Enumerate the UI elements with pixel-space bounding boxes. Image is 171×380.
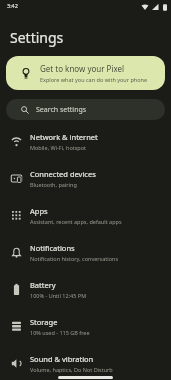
staticText: Explore what you can do with your phone bbox=[40, 76, 148, 83]
button[interactable]: Sound & vibration bbox=[0, 345, 171, 380]
staticText: Search settings bbox=[36, 105, 87, 115]
staticText: Apps bbox=[30, 206, 48, 216]
staticText: 3:42 bbox=[7, 2, 18, 9]
button[interactable]: Get to know your Pixel bbox=[6, 56, 165, 90]
staticText: Assistant, recent apps, default apps bbox=[30, 218, 122, 225]
staticText: 100% - Until 12:45 PM bbox=[30, 292, 87, 299]
button[interactable]: Notifications bbox=[0, 234, 171, 271]
button[interactable]: Network & internet bbox=[0, 123, 171, 160]
staticText: Sound & vibration bbox=[30, 354, 94, 364]
staticText: Storage bbox=[30, 317, 58, 327]
staticText: Connected devices bbox=[30, 169, 96, 179]
staticText: Notification history, conversations bbox=[30, 255, 119, 262]
staticText: Get to know your Pixel bbox=[40, 63, 125, 74]
staticText: Bluetooth, pairing bbox=[30, 181, 77, 188]
button[interactable]: Apps bbox=[0, 197, 171, 234]
button[interactable]: Battery bbox=[0, 271, 171, 308]
staticText: Network & internet bbox=[30, 132, 98, 142]
staticText: Volume, haptics, Do Not Disturb bbox=[30, 366, 113, 373]
staticText: Battery bbox=[30, 280, 56, 290]
staticText: 10% used - 115 GB free bbox=[30, 329, 90, 336]
staticText: Mobile, Wi-Fi, hotspot bbox=[30, 144, 87, 151]
staticText: Notifications bbox=[30, 243, 75, 253]
button[interactable]: Connected devices bbox=[0, 160, 171, 197]
button[interactable]: Storage bbox=[0, 308, 171, 345]
button[interactable]: Search settings bbox=[6, 99, 165, 120]
staticText: Settings bbox=[10, 28, 64, 47]
